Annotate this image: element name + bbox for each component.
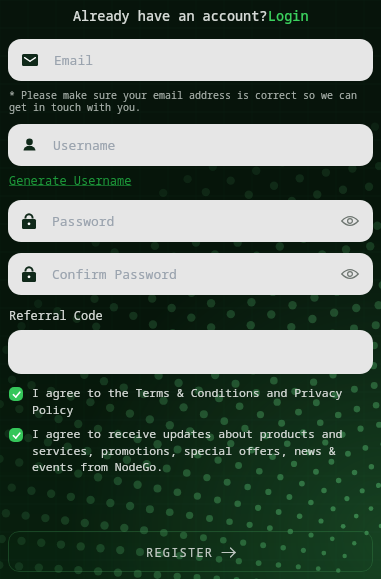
button[interactable]: Username xyxy=(8,124,373,166)
staticText: Referral Code xyxy=(9,307,103,323)
other: Username xyxy=(22,138,37,153)
staticText: Username xyxy=(53,136,359,154)
staticText: Login xyxy=(268,7,309,25)
button[interactable]: REGISTER xyxy=(8,531,373,572)
staticText: Already have an account? xyxy=(73,7,268,25)
staticText: I agree to receive updates about product… xyxy=(32,426,372,474)
other: Password xyxy=(22,266,36,282)
staticText: I agree to the Terms & Conditions and Pr… xyxy=(32,385,372,417)
button[interactable] xyxy=(8,330,373,374)
other: Show password xyxy=(341,268,359,280)
button[interactable]: Email xyxy=(8,39,373,81)
button[interactable]: I agree to the Terms & Conditions and Pr… xyxy=(9,385,372,417)
staticText: Generate Username xyxy=(9,172,132,188)
staticText: Password xyxy=(52,212,341,230)
button[interactable]: Password xyxy=(8,253,373,295)
button[interactable]: Login xyxy=(268,7,309,25)
staticText: Email xyxy=(54,51,359,69)
button[interactable]: I agree to receive updates about product… xyxy=(9,426,372,474)
staticText: * Please make sure your email address is… xyxy=(9,88,372,114)
button[interactable]: Generate Username xyxy=(9,172,132,188)
button[interactable]: Password xyxy=(8,200,373,242)
other: Password xyxy=(22,213,36,229)
other: Email xyxy=(22,54,38,66)
other: Show password xyxy=(341,215,359,227)
staticText: Confirm Password xyxy=(52,265,341,283)
staticText: REGISTER xyxy=(146,544,214,560)
